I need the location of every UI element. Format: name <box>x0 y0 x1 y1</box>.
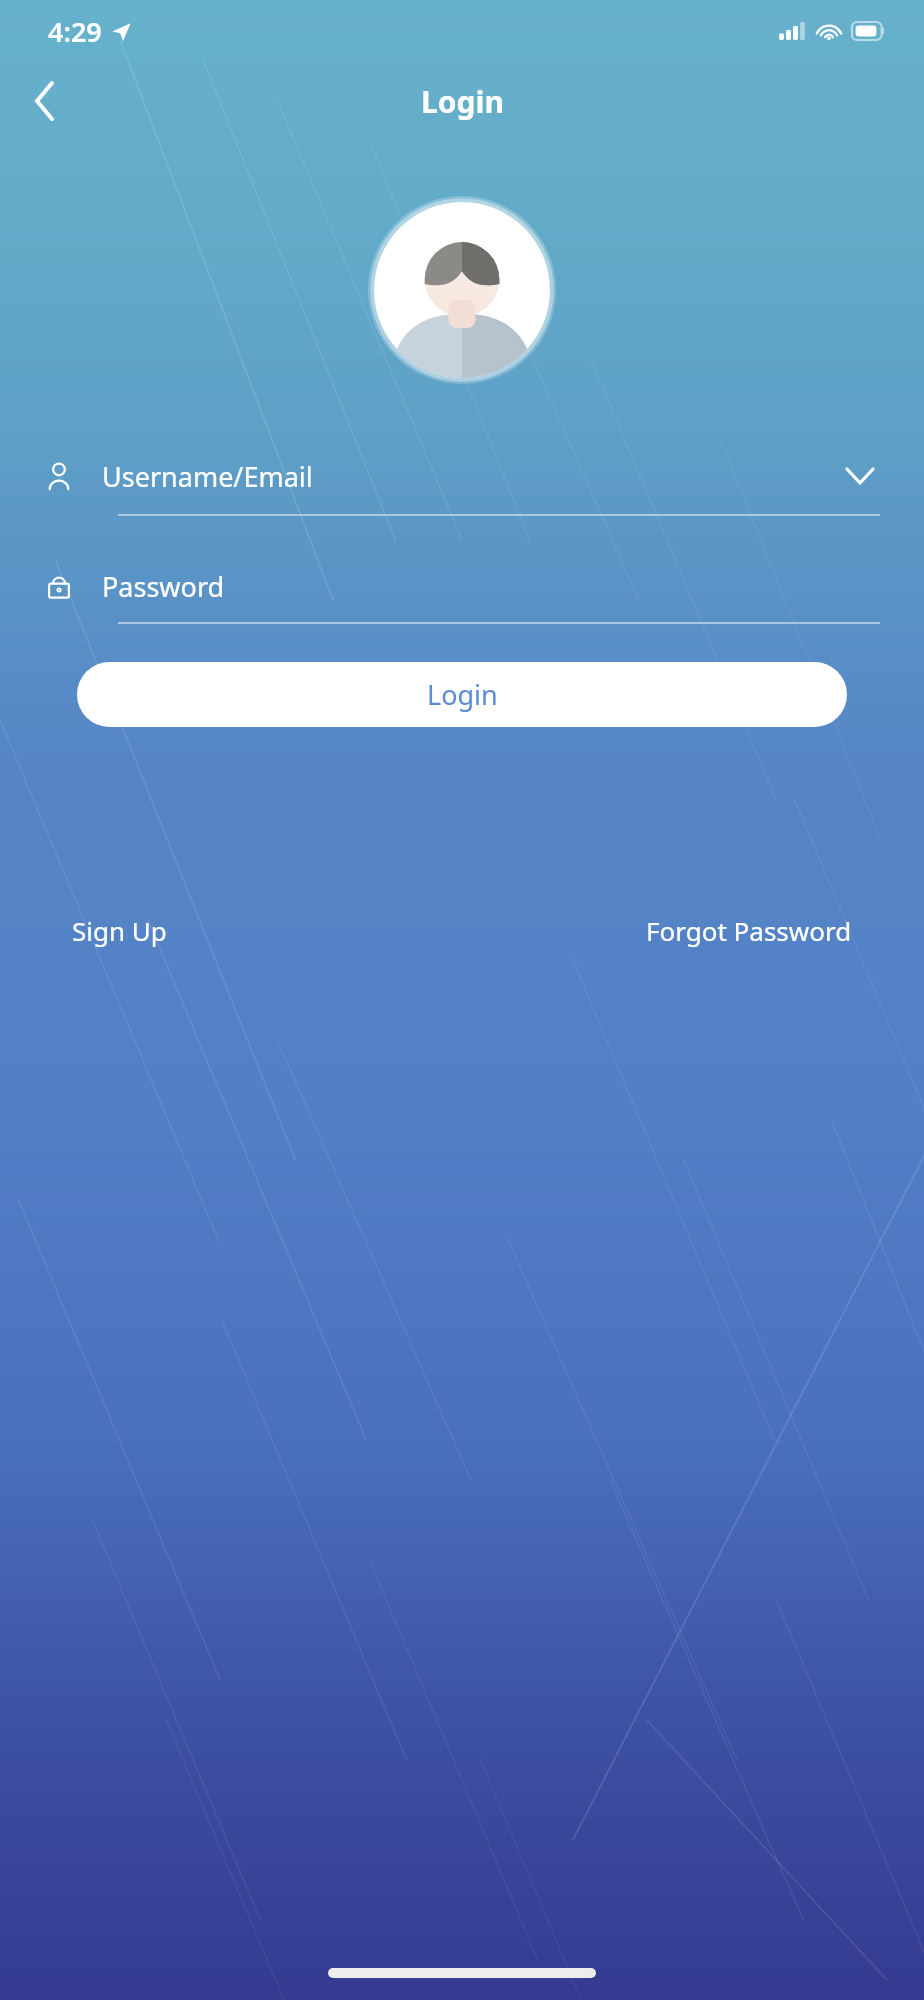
button[interactable]: Login <box>77 662 847 727</box>
staticText: 4:29 <box>48 13 102 50</box>
button[interactable]: Back <box>14 70 76 132</box>
staticText: Sign Up <box>72 913 167 948</box>
button[interactable]: Forgot Password <box>646 913 852 948</box>
button[interactable]: Password <box>44 550 880 622</box>
staticText: Login <box>427 676 498 713</box>
button[interactable]: Sign Up <box>72 913 167 948</box>
button[interactable]: Username/Email <box>44 438 880 514</box>
button[interactable]: Show saved accounts <box>840 456 880 496</box>
staticText: Username/Email <box>102 458 313 495</box>
staticText: Password <box>102 568 225 605</box>
staticText: Login <box>421 81 504 122</box>
staticText: Forgot Password <box>646 913 852 948</box>
